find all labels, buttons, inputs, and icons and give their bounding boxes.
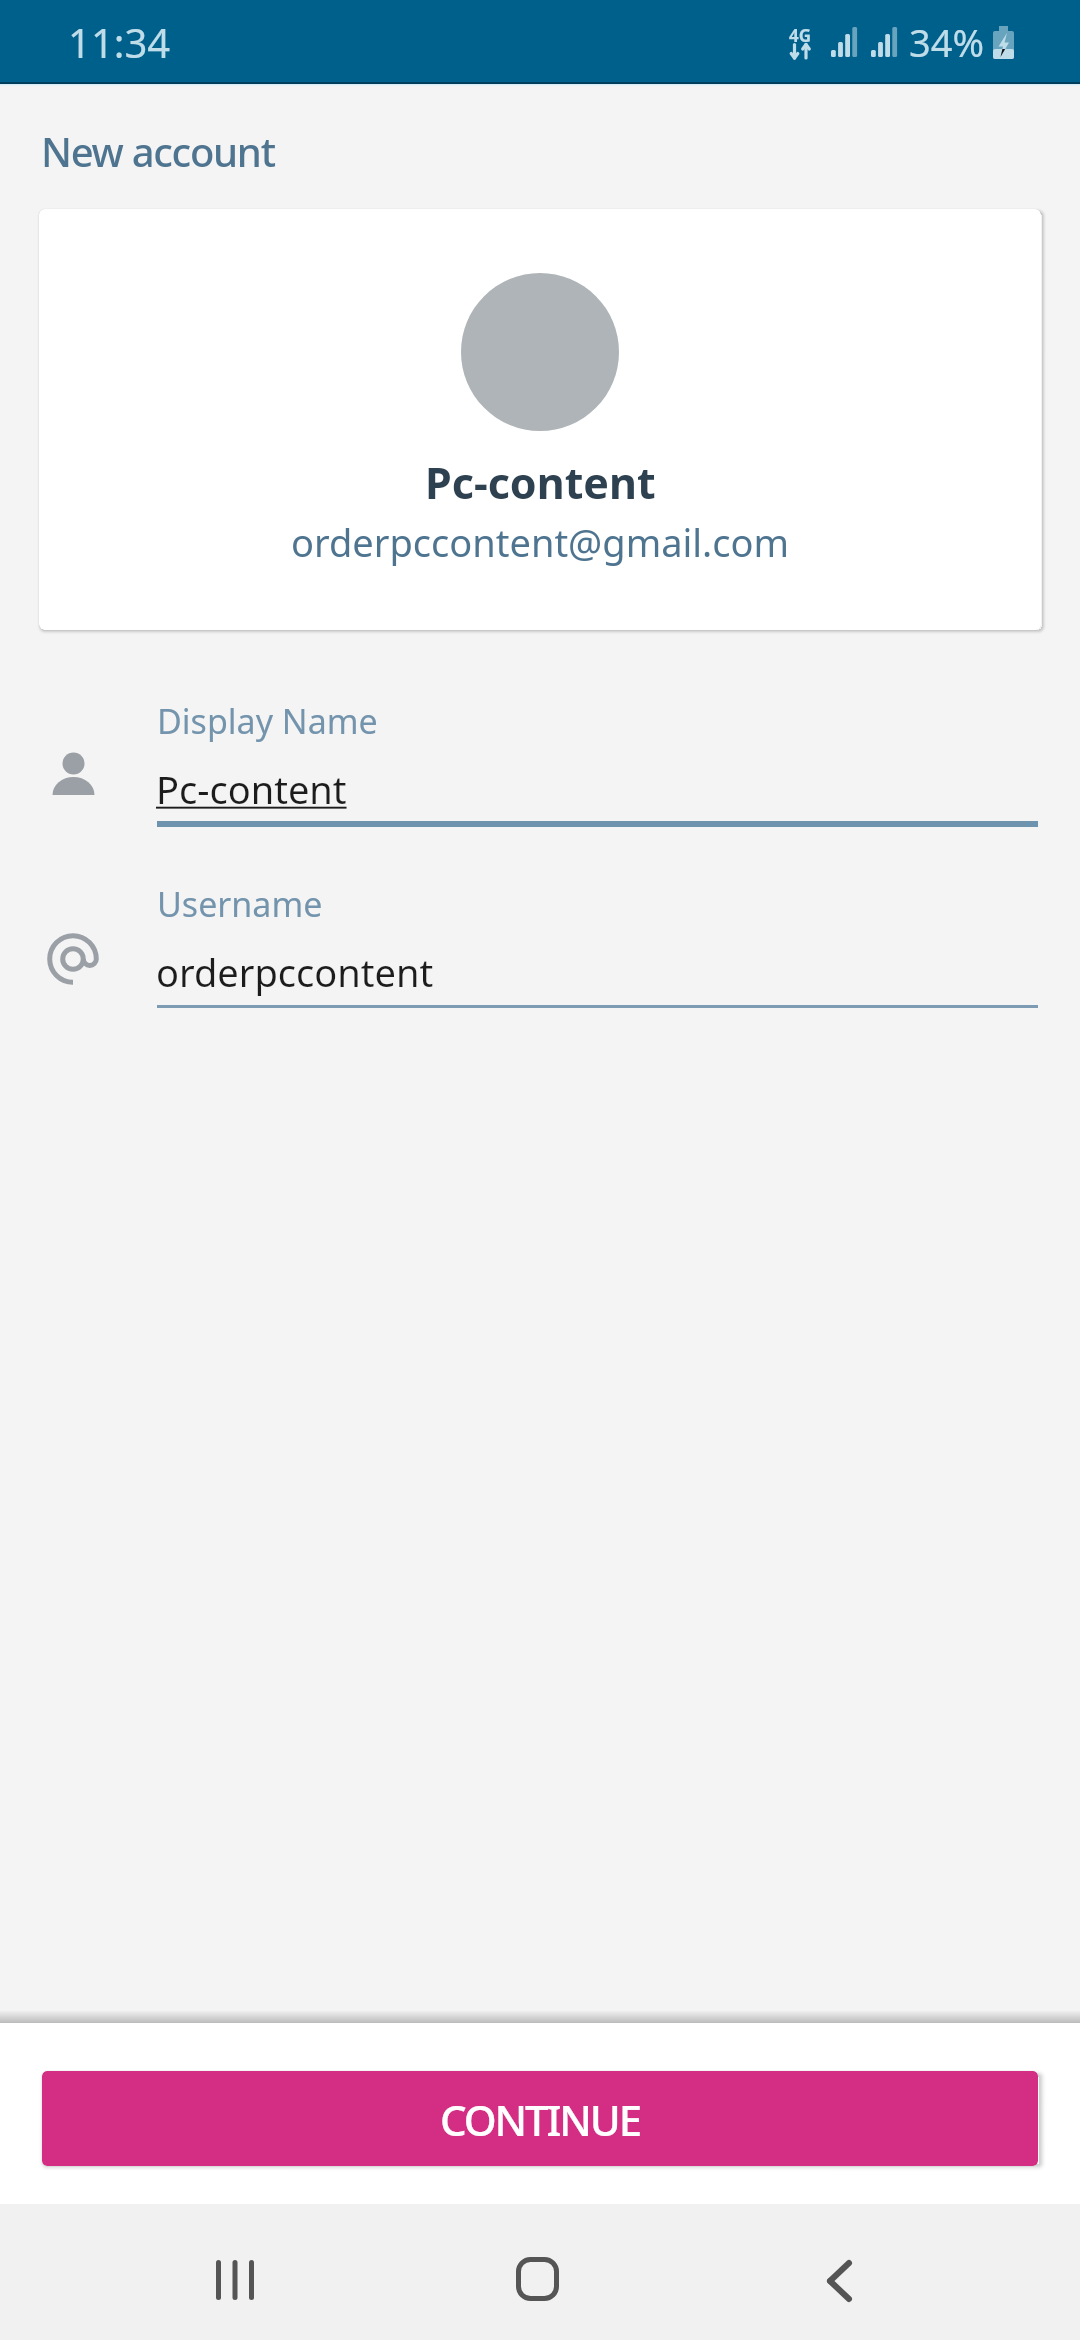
button[interactable]: Pc-content [39,209,1041,630]
button[interactable]: Home [447,2234,627,2324]
staticText: 34% [909,16,985,68]
button[interactable]: Username [0,880,1080,1025]
button[interactable]: Recent apps [145,2235,325,2325]
button[interactable]: CONTINUE [42,2071,1038,2166]
staticText: orderpccontent@gmail.com [291,516,790,568]
staticText: Pc-content [425,453,656,512]
staticText: 4G [789,24,812,47]
staticText: New account [41,124,275,178]
staticText: Display Name [157,698,378,744]
staticText: Username [157,881,323,927]
button[interactable]: Display Name [0,697,1080,842]
staticText: Pc-content [156,763,347,815]
staticText: CONTINUE [440,2091,641,2148]
staticText: 11:34 [68,15,171,69]
button[interactable]: Back [749,2236,929,2326]
staticText: orderpccontent [156,946,434,998]
